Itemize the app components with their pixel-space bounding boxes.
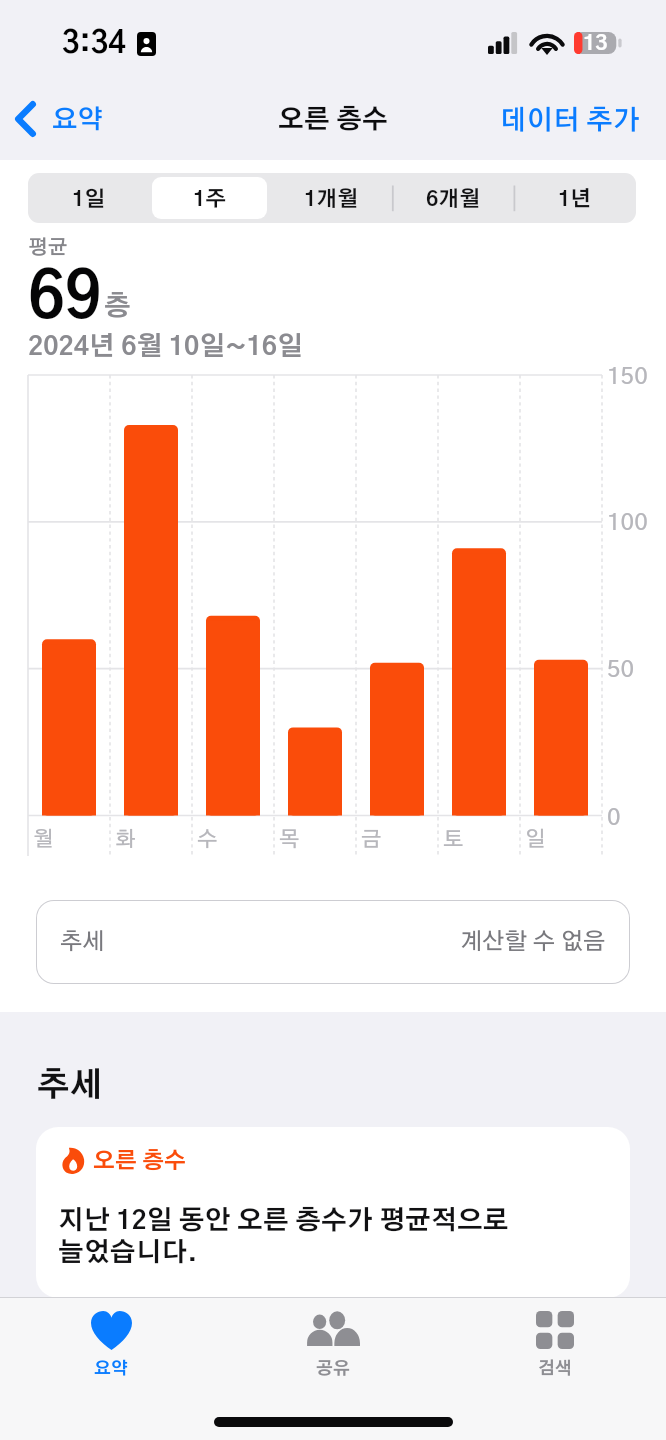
staticText: 오른 층수	[93, 1150, 187, 1172]
button[interactable]: Back	[0, 94, 118, 146]
staticText: 1년	[558, 189, 592, 210]
button[interactable]: 추세	[36, 900, 630, 984]
staticText: 69	[28, 268, 102, 331]
staticText: 2024년 6월 10일~16일	[28, 334, 303, 360]
staticText: 1일	[72, 189, 106, 210]
staticText: 요약	[94, 1360, 128, 1377]
staticText: 100	[607, 511, 648, 535]
staticText: 0	[607, 806, 621, 830]
button[interactable]: 1개월	[273, 177, 389, 219]
staticText: 검색	[538, 1360, 572, 1377]
staticText: 요약	[52, 107, 104, 133]
staticText: 150	[607, 365, 648, 389]
staticText: 공유	[316, 1360, 350, 1377]
staticText: 데이터 추가	[500, 107, 640, 134]
staticText: 1개월	[304, 189, 359, 210]
button[interactable]: 검색	[444, 1297, 666, 1440]
staticText: 오른 층수	[278, 107, 388, 133]
staticText: 지난 12일 동안 오른 층수가 평균적으로 늘었습니다.	[58, 1208, 509, 1266]
staticText: 추세	[37, 1070, 103, 1103]
button[interactable]: 1주	[152, 177, 267, 219]
staticText: 추세	[60, 931, 105, 954]
other: Back	[15, 101, 36, 137]
staticText: 일	[525, 829, 546, 850]
button[interactable]: 요약	[0, 1297, 222, 1440]
staticText: 층	[104, 293, 131, 320]
button[interactable]: 오른 층수	[36, 1127, 630, 1298]
button[interactable]: 6개월	[395, 177, 511, 219]
staticText: 계산할 수 없음	[460, 931, 606, 954]
staticText: 토	[443, 829, 464, 850]
button[interactable]: 1년	[517, 177, 633, 219]
staticText: 목	[279, 829, 300, 850]
staticText: 13	[583, 33, 608, 54]
button[interactable]: 공유	[222, 1297, 444, 1440]
button[interactable]: 1일	[31, 177, 146, 219]
staticText: 6개월	[426, 189, 481, 210]
staticText: 금	[361, 829, 382, 850]
button[interactable]: 데이터 추가	[474, 99, 666, 142]
staticText: 월	[33, 829, 54, 850]
staticText: 50	[607, 658, 635, 682]
staticText: 3:34	[62, 29, 126, 59]
staticText: 1주	[193, 189, 227, 210]
staticText: 평균	[28, 238, 68, 258]
staticText: 수	[197, 829, 218, 850]
staticText: 화	[115, 829, 136, 850]
